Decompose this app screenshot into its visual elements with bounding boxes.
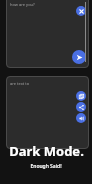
button[interactable]: Share: [76, 102, 86, 112]
staticText: how are you?: [10, 2, 35, 7]
button[interactable]: are text to: [6, 76, 89, 149]
staticText: are text to: [10, 81, 30, 86]
button[interactable]: Speak: [76, 113, 86, 123]
button[interactable]: Clear text: [76, 6, 86, 16]
button[interactable]: how are you?: [6, 0, 89, 68]
staticText: Enough Said!: [30, 163, 62, 170]
staticText: Dark Mode.: [9, 142, 84, 160]
button[interactable]: Copy: [76, 91, 86, 101]
button[interactable]: Send: [72, 50, 86, 64]
